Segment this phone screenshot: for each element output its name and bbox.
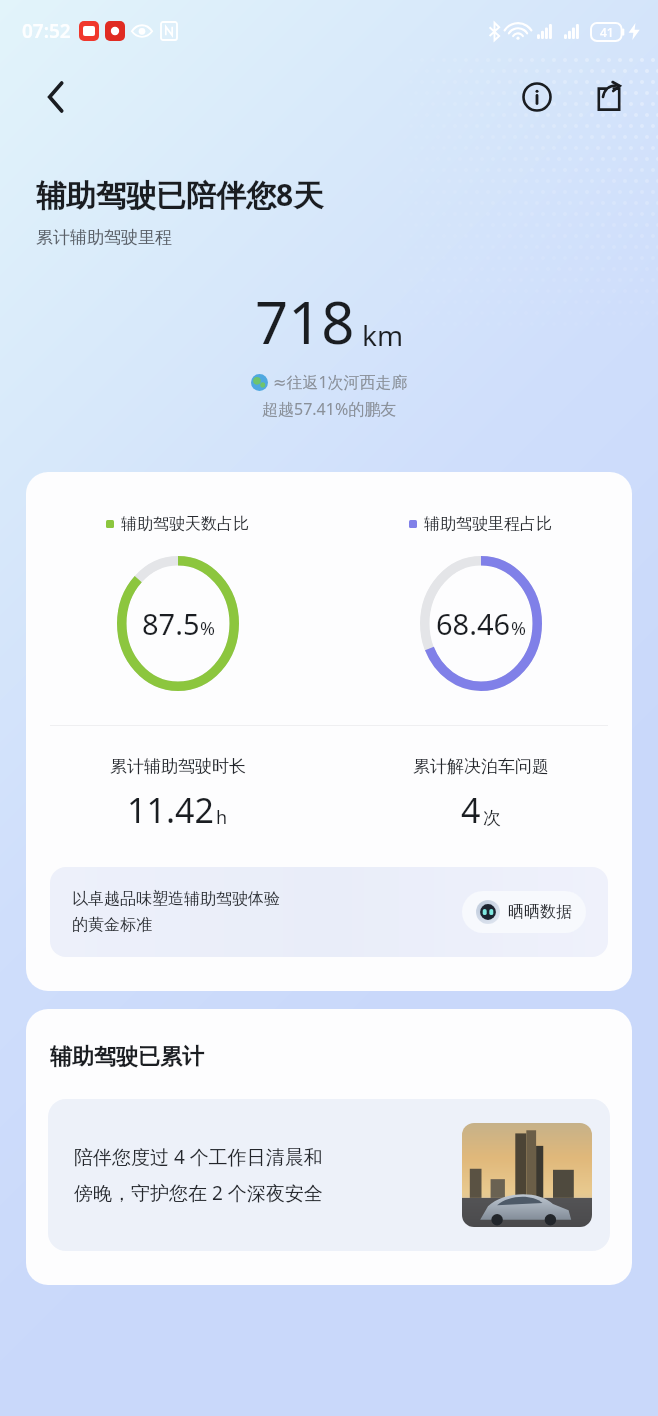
- staticText: 的黄金标准: [72, 915, 152, 935]
- staticText: %: [511, 616, 526, 641]
- button[interactable]: 陪伴您度过 4 个工作日清晨和: [48, 1099, 610, 1251]
- staticText: 晒晒数据: [508, 902, 572, 922]
- staticText: 辅助驾驶天数占比: [121, 514, 249, 534]
- staticText: 11.42: [127, 787, 214, 833]
- staticText: %: [200, 616, 215, 641]
- staticText: 辅助驾驶已陪伴您8天: [36, 174, 324, 215]
- staticText: 辅助驾驶已累计: [50, 1043, 204, 1071]
- button[interactable]: Back: [34, 75, 78, 119]
- button[interactable]: Info: [514, 74, 560, 120]
- staticText: 07:52: [22, 18, 71, 44]
- staticText: 718: [255, 282, 355, 361]
- staticText: 累计辅助驾驶里程: [36, 227, 172, 248]
- staticText: 累计辅助驾驶时长: [110, 756, 246, 777]
- staticText: h: [216, 805, 228, 830]
- staticText: 次: [483, 807, 501, 830]
- staticText: 87.5: [142, 604, 200, 643]
- staticText: 辅助驾驶里程占比: [424, 514, 552, 534]
- staticText: 陪伴您度过 4 个工作日清晨和: [74, 1144, 323, 1170]
- staticText: 4: [461, 787, 481, 833]
- staticText: 68.46: [436, 604, 511, 643]
- staticText: 41: [600, 24, 614, 40]
- staticText: 以卓越品味塑造辅助驾驶体验: [72, 889, 280, 909]
- button[interactable]: Share: [586, 74, 632, 120]
- staticText: 累计解决泊车问题: [413, 756, 549, 777]
- staticText: 傍晚，守护您在 2 个深夜安全: [74, 1180, 323, 1206]
- staticText: km: [362, 316, 404, 354]
- button[interactable]: 晒晒数据: [462, 891, 586, 933]
- staticText: 超越57.41%的鹏友: [262, 398, 397, 420]
- staticText: ≈往返1次河西走廊: [273, 371, 408, 393]
